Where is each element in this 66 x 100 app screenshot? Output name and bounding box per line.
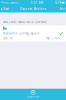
staticText: •••○○ Carrier xyxy=(1,1,18,4)
staticText: SELECT ANY MEDICINE TO DISPENSE xyxy=(3,20,46,24)
staticText: Exp 11/26 xyxy=(46,36,60,40)
staticText: Dispense xyxy=(26,95,39,98)
button[interactable]: Back xyxy=(0,5,9,13)
staticText: Edit xyxy=(60,7,65,11)
staticText: Back xyxy=(3,7,8,11)
staticText: Dispense Medicine xyxy=(19,7,46,11)
button[interactable]: Dispense xyxy=(26,90,40,98)
button[interactable]: Rx xyxy=(0,25,66,42)
button[interactable]: Edit xyxy=(59,5,66,13)
staticText: Amoxicillin 250mg capsule xyxy=(3,32,40,35)
staticText: 9:41 AM xyxy=(31,1,43,4)
staticText: 83% xyxy=(55,1,61,4)
staticText: Qty: 30 xyxy=(3,36,13,40)
staticText: Rx xyxy=(3,27,7,30)
